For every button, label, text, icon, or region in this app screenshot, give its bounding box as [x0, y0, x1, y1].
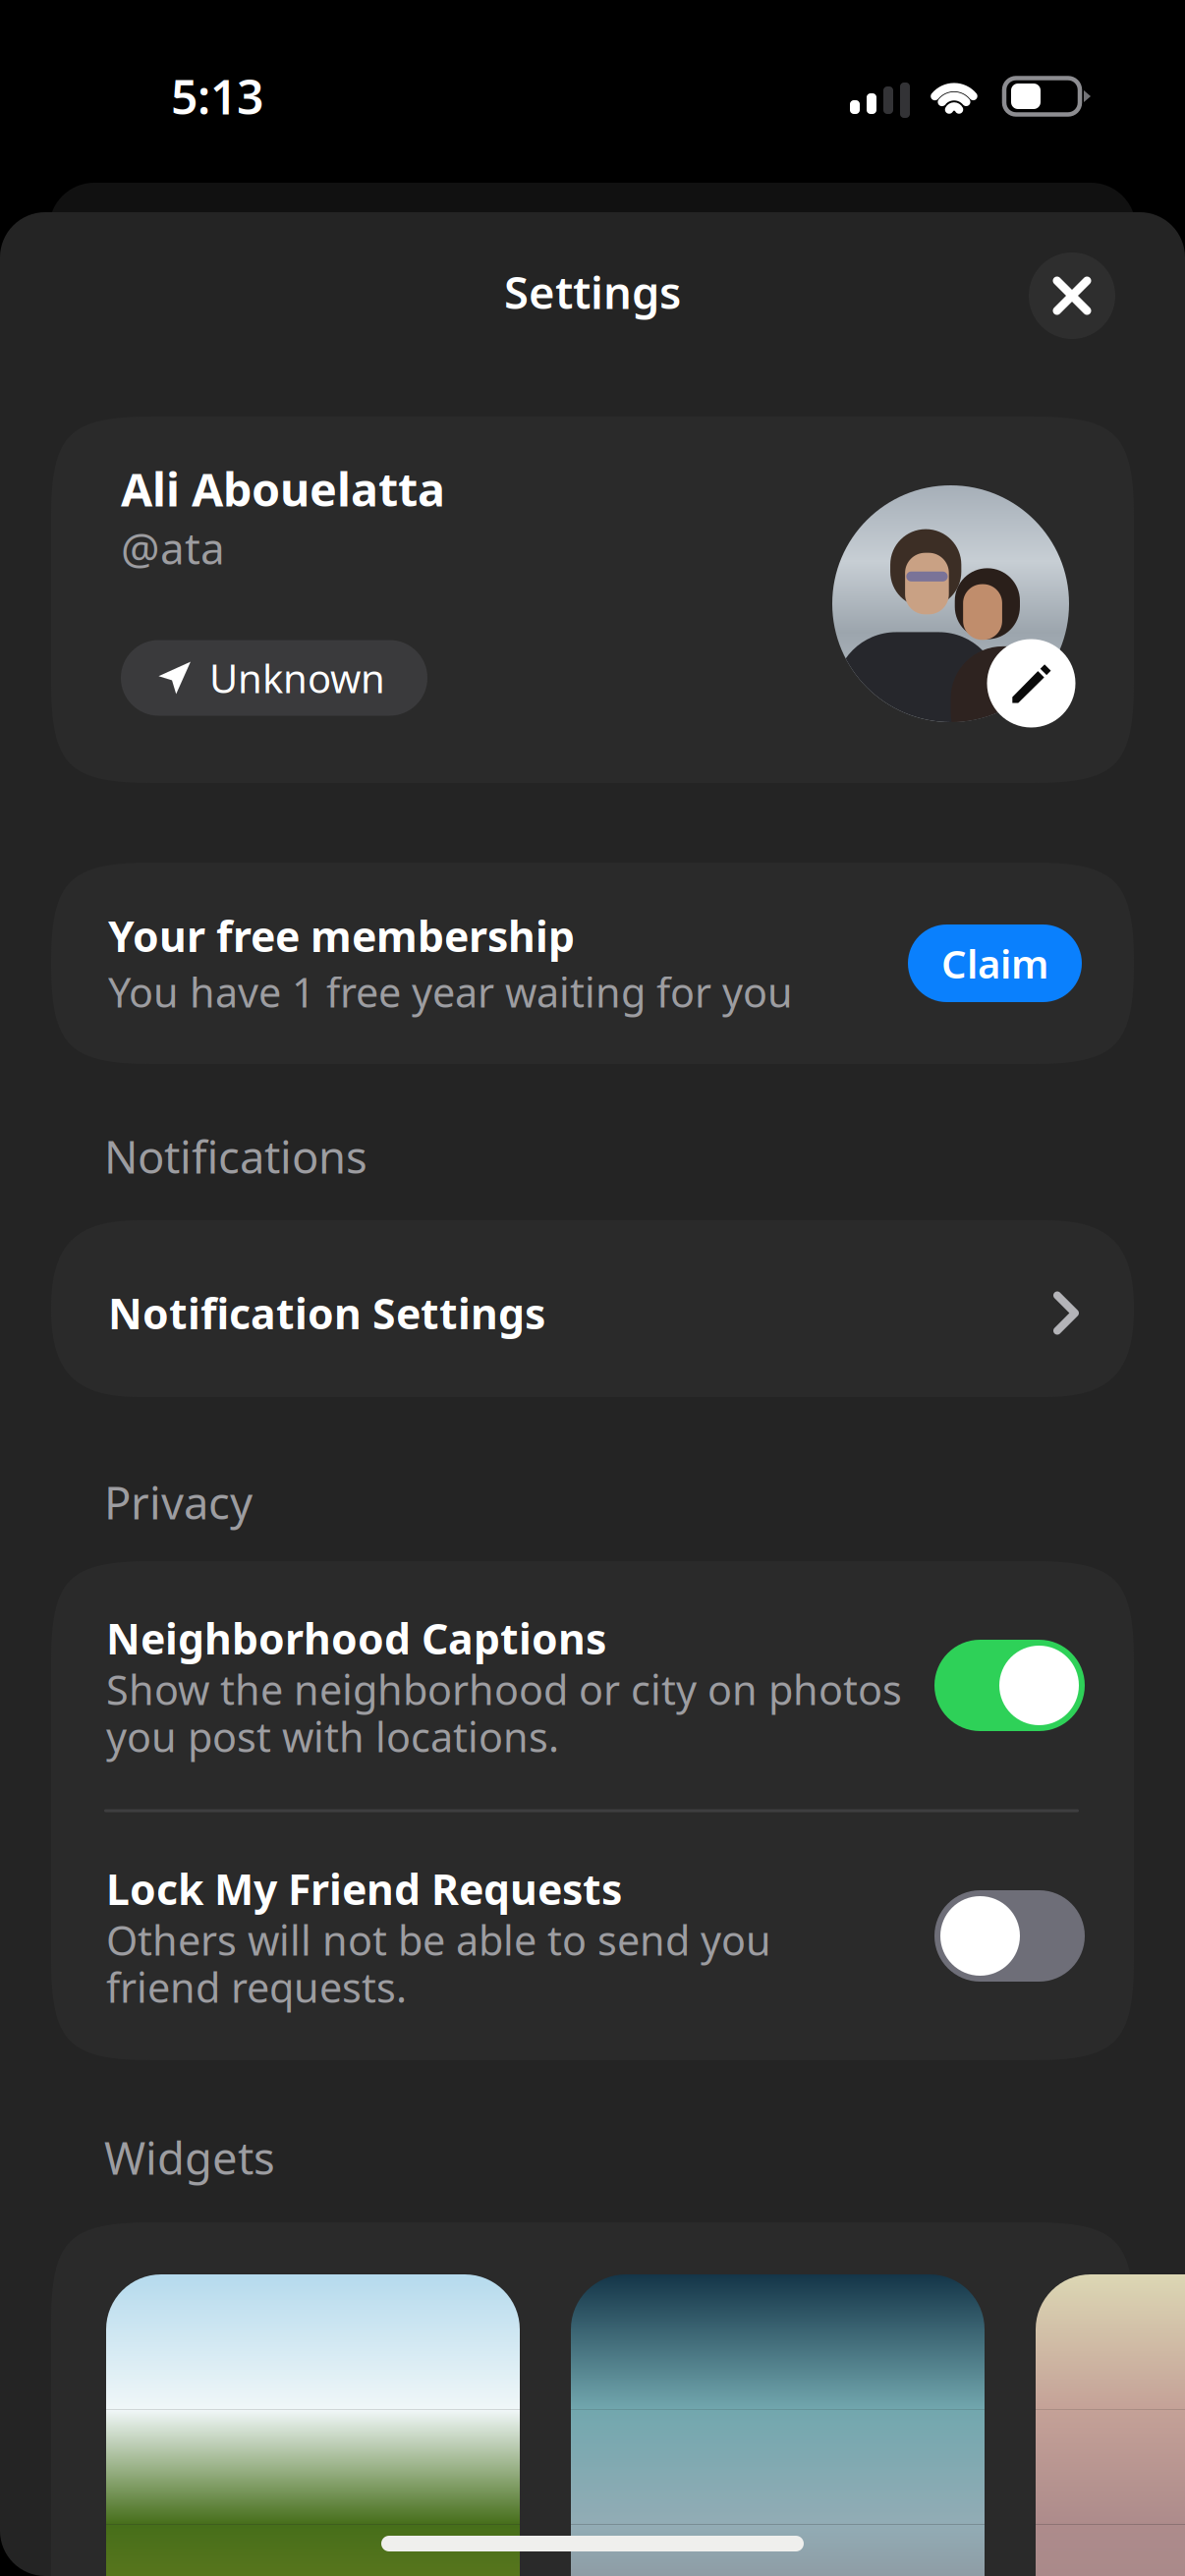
staticText: Your free membership — [108, 908, 575, 964]
staticText: Claim — [941, 937, 1048, 989]
staticText: Settings — [504, 262, 681, 321]
staticText: Notification Settings — [108, 1285, 545, 1341]
button[interactable]: Claim — [908, 924, 1082, 1002]
staticText: Widgets — [104, 2128, 275, 2187]
staticText: 5:13 — [171, 65, 263, 128]
button[interactable]: Neighborhood Captions — [934, 1640, 1085, 1731]
staticText: Neighborhood Captions — [106, 1610, 606, 1666]
staticText: @ata — [121, 519, 225, 576]
staticText: you post with locations. — [106, 1710, 559, 1764]
staticText: Others will not be able to send you — [106, 1913, 771, 1967]
button[interactable]: Close — [1017, 241, 1127, 351]
staticText: You have 1 free year waiting for you — [108, 965, 793, 1019]
button[interactable]: Notification Settings — [51, 1220, 1134, 1397]
staticText: friend requests. — [106, 1960, 407, 2014]
button[interactable]: Lock My Friend Requests — [934, 1890, 1085, 1982]
staticText: Notifications — [104, 1127, 367, 1186]
staticText: Privacy — [104, 1473, 253, 1532]
button[interactable]: Ali Abouelatta — [51, 417, 1134, 783]
staticText: Ali Abouelatta — [121, 458, 445, 519]
staticText: Unknown — [209, 652, 385, 704]
staticText: Lock My Friend Requests — [106, 1861, 622, 1917]
staticText: Show the neighborhood or city on photos — [106, 1662, 902, 1716]
